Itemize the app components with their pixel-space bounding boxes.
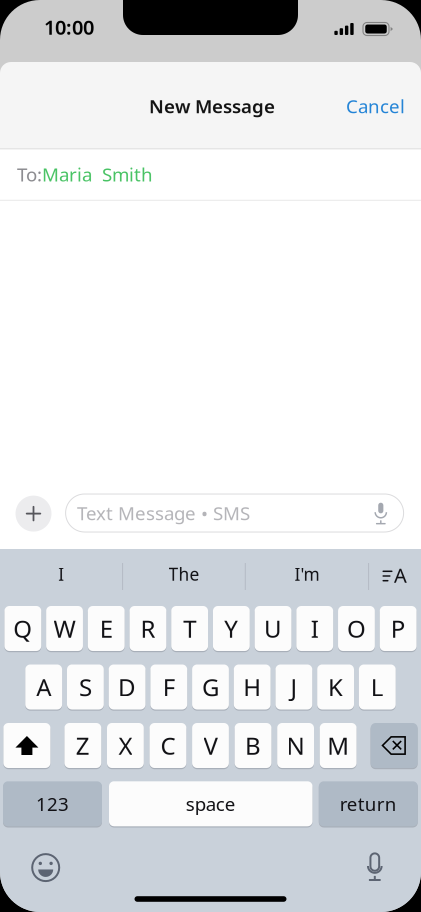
- button[interactable]: Q: [4, 605, 41, 652]
- button[interactable]: Cancel: [338, 85, 413, 127]
- staticText: Y: [224, 613, 238, 644]
- button[interactable]: Shift: [3, 722, 50, 769]
- button[interactable]: U: [255, 605, 291, 652]
- button[interactable]: A: [25, 664, 62, 710]
- staticText: I: [58, 562, 64, 585]
- staticText: W: [53, 613, 75, 644]
- staticText: New Message: [149, 94, 275, 118]
- staticText: N: [287, 730, 305, 761]
- staticText: I: [311, 613, 319, 644]
- button[interactable]: I'm: [247, 551, 367, 597]
- button[interactable]: Text formatting: [371, 552, 419, 598]
- staticText: F: [163, 671, 175, 703]
- staticText: H: [243, 671, 261, 703]
- button[interactable]: Numbers: [3, 781, 102, 827]
- button[interactable]: V: [192, 722, 229, 769]
- staticText: space: [186, 791, 236, 816]
- button[interactable]: Add attachment: [15, 496, 51, 532]
- button[interactable]: S: [67, 664, 104, 710]
- button[interactable]: Dictation: [353, 845, 397, 889]
- staticText: P: [391, 613, 406, 644]
- staticText: R: [140, 613, 155, 644]
- staticText: U: [264, 613, 282, 644]
- button[interactable]: return: [319, 781, 418, 827]
- staticText: O: [347, 613, 366, 644]
- staticText: M: [327, 730, 349, 761]
- staticText: D: [118, 671, 136, 703]
- button[interactable]: L: [359, 664, 396, 710]
- button[interactable]: Y: [213, 605, 250, 652]
- button[interactable]: J: [275, 664, 312, 710]
- staticText: To:: [17, 162, 42, 187]
- button[interactable]: O: [338, 605, 375, 652]
- button[interactable]: E: [88, 605, 125, 652]
- staticText: return: [340, 791, 397, 816]
- staticText: Z: [76, 730, 90, 761]
- staticText: X: [118, 730, 132, 761]
- button[interactable]: C: [150, 722, 186, 769]
- staticText: Cancel: [346, 94, 405, 118]
- staticText: S: [79, 671, 92, 703]
- button[interactable]: F: [150, 664, 187, 710]
- button[interactable]: N: [277, 722, 314, 769]
- staticText: Maria Smith: [42, 162, 153, 187]
- button[interactable]: X: [107, 722, 144, 769]
- button[interactable]: K: [317, 664, 354, 710]
- staticText: 123: [36, 791, 69, 816]
- staticText: E: [100, 613, 113, 644]
- staticText: A: [394, 562, 407, 588]
- staticText: T: [183, 613, 196, 644]
- button[interactable]: I: [1, 551, 121, 597]
- staticText: Q: [13, 613, 32, 644]
- button[interactable]: D: [109, 664, 145, 710]
- button[interactable]: B: [235, 722, 271, 769]
- staticText: 10:00: [44, 14, 94, 40]
- button[interactable]: Delete: [371, 722, 418, 769]
- staticText: Text Message • SMS: [77, 501, 250, 525]
- staticText: A: [36, 671, 51, 703]
- staticText: J: [290, 671, 297, 703]
- button[interactable]: I: [296, 605, 333, 652]
- staticText: I'm: [294, 562, 319, 585]
- button[interactable]: Dictate message: [368, 498, 394, 528]
- button[interactable]: space: [109, 781, 312, 827]
- button[interactable]: H: [234, 664, 271, 710]
- staticText: V: [203, 730, 217, 761]
- staticText: L: [371, 671, 384, 703]
- button[interactable]: T: [171, 605, 208, 652]
- staticText: B: [245, 730, 261, 761]
- button[interactable]: Z: [64, 722, 101, 769]
- button[interactable]: Text Message • SMS: [66, 494, 404, 532]
- staticText: K: [328, 671, 343, 703]
- button[interactable]: Emoji: [24, 846, 68, 890]
- button[interactable]: To:: [0, 149, 421, 200]
- button[interactable]: G: [192, 664, 229, 710]
- button[interactable]: P: [380, 605, 416, 652]
- button[interactable]: W: [46, 605, 83, 652]
- button[interactable]: M: [320, 722, 357, 769]
- staticText: The: [168, 562, 199, 585]
- button[interactable]: R: [129, 605, 166, 652]
- staticText: C: [160, 730, 175, 761]
- staticText: G: [202, 671, 219, 703]
- button[interactable]: The: [124, 551, 244, 597]
